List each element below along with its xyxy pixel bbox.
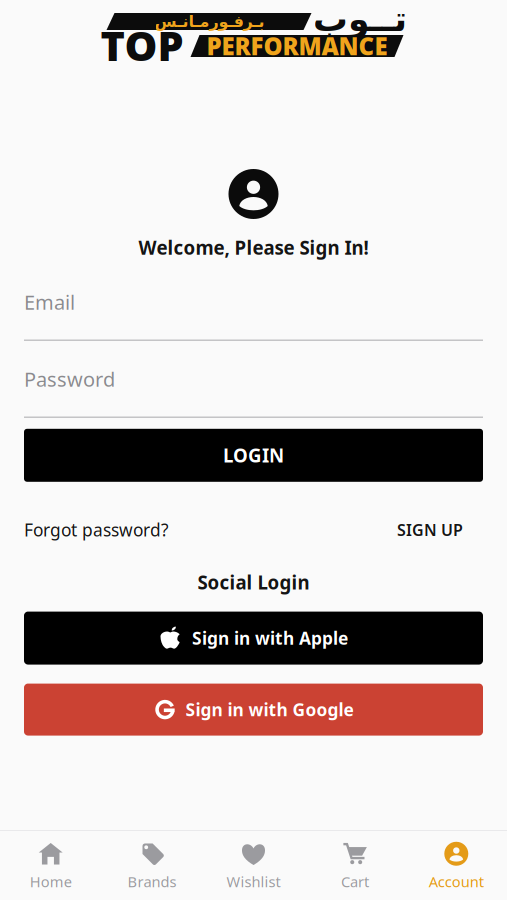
staticText: Password	[24, 366, 115, 392]
staticText: LOGIN	[223, 443, 284, 468]
button[interactable]: Account	[406, 830, 507, 900]
button[interactable]: Forgot password?	[24, 518, 169, 541]
staticText: بـرفـورمـانـس	[154, 12, 264, 31]
button[interactable]: Cart	[304, 830, 406, 900]
staticText: PERFORMANCE	[206, 30, 387, 62]
staticText: Email	[24, 289, 75, 315]
button[interactable]: Sign in with Google	[24, 684, 483, 736]
staticText: Welcome, Please Sign In!	[138, 235, 368, 260]
button[interactable]: Sign in with Apple	[24, 612, 483, 665]
button[interactable]: Home	[0, 830, 101, 900]
staticText: Sign in with Apple	[192, 627, 348, 650]
staticText: Social Login	[197, 570, 309, 595]
staticText: SIGN UP	[397, 519, 463, 540]
staticText: Account	[429, 872, 484, 891]
staticText: تــوب	[312, 0, 406, 39]
staticText: Home	[30, 872, 72, 891]
staticText: Sign in with Google	[185, 698, 353, 721]
button[interactable]: Brands	[101, 830, 203, 900]
staticText: TOP	[100, 18, 183, 72]
button[interactable]: Wishlist	[203, 830, 304, 900]
staticText: Cart	[341, 872, 369, 891]
button[interactable]: SIGN UP	[397, 519, 483, 540]
staticText: Wishlist	[226, 872, 280, 891]
button[interactable]: LOGIN	[24, 429, 483, 482]
staticText: Brands	[128, 872, 177, 891]
staticText: Forgot password?	[24, 518, 169, 541]
